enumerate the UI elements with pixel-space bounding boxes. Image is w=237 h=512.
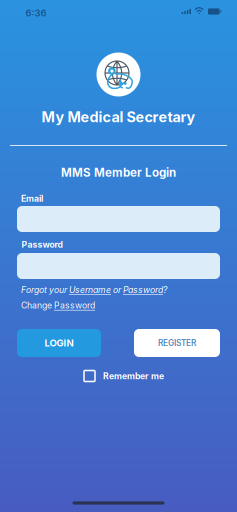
staticText: REGISTER xyxy=(158,338,196,348)
staticText: or xyxy=(111,284,123,295)
staticText: Password xyxy=(54,300,95,310)
button[interactable]: LOGIN xyxy=(17,329,101,357)
staticText: Remember me xyxy=(103,371,164,381)
staticText: Email xyxy=(21,193,43,204)
button[interactable]: Forgot your xyxy=(21,284,167,295)
staticText: ? xyxy=(163,284,167,295)
staticText: MMS Member Login xyxy=(61,165,176,179)
staticText: My Medical Secretary xyxy=(41,108,195,126)
staticText: Forgot your xyxy=(21,284,69,295)
staticText: LOGIN xyxy=(44,337,73,349)
button[interactable]: Remember me xyxy=(84,370,164,381)
staticText: Password xyxy=(123,284,163,295)
staticText: Password xyxy=(21,239,62,250)
button[interactable]: REGISTER xyxy=(134,329,220,357)
staticText: 6:36 xyxy=(25,7,46,19)
staticText: Change xyxy=(21,300,54,310)
staticText: Username xyxy=(69,284,111,295)
button[interactable]: Change xyxy=(21,300,95,310)
